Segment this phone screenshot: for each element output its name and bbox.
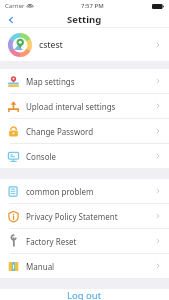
staticText: Manual [26,261,55,272]
button[interactable]: Map settings [0,69,169,93]
staticText: Map settings [26,76,75,87]
staticText: Factory Reset [26,236,77,247]
button[interactable]: Upload interval settings [0,94,169,118]
button[interactable]: Console [0,144,169,168]
staticText: cstest [39,39,63,51]
staticText: Change Password [26,126,94,137]
button[interactable]: Change Password [0,119,169,143]
staticText: Carrier [5,2,25,10]
staticText: Setting [67,13,102,26]
staticText: Console [26,151,57,162]
staticText: 7:57 PM [81,2,104,10]
button[interactable]: Back [4,13,18,27]
button[interactable]: Privacy Policy Statement [0,204,169,228]
staticText: Log out [67,289,102,300]
staticText: Privacy Policy Statement [26,211,118,222]
button[interactable]: Manual [0,254,169,278]
staticText: common problem [26,186,94,197]
button[interactable]: Log out [0,289,169,300]
button[interactable]: common problem [0,179,169,203]
staticText: Upload interval settings [26,101,116,112]
button[interactable]: cstest [0,28,169,61]
button[interactable]: Factory Reset [0,229,169,253]
